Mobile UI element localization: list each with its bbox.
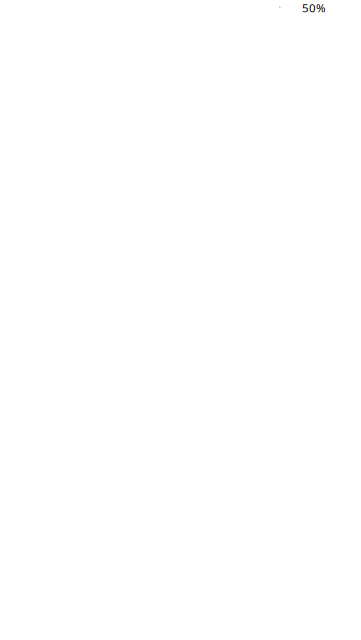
staticText: 50% (302, 0, 326, 16)
